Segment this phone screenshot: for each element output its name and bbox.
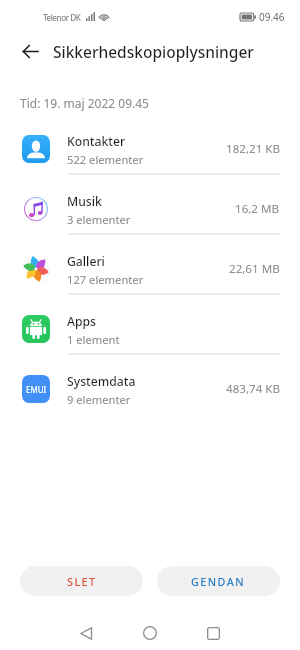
staticText: Galleri	[67, 253, 105, 270]
staticText: Musik	[67, 193, 102, 210]
staticText: Apps	[67, 313, 97, 330]
staticText: 182,21 KB	[226, 141, 280, 157]
button[interactable]: SLET	[20, 566, 143, 596]
staticText: Kontakter	[67, 133, 126, 150]
staticText: EMUI	[26, 384, 47, 395]
button[interactable]: Back	[11, 32, 49, 70]
staticText: 127 elementer	[67, 272, 144, 287]
staticText: GENDAN	[191, 574, 246, 589]
staticText: Systemdata	[67, 373, 136, 390]
staticText: Telenor DK	[43, 12, 81, 23]
button[interactable]: GENDAN	[157, 566, 280, 596]
staticText: Tid: 19. maj 2022 09.45	[20, 95, 149, 111]
staticText: 3 elementer	[67, 212, 131, 227]
button[interactable]: Recents	[200, 620, 226, 646]
button[interactable]: Galleri	[0, 239, 300, 299]
staticText: 1 element	[67, 332, 120, 347]
staticText: Sikkerhedskopioplysninger	[53, 41, 254, 62]
staticText: SLET	[67, 574, 97, 589]
staticText: 483,74 KB	[226, 381, 280, 397]
button[interactable]: EMUI	[0, 359, 300, 419]
staticText: 522 elementer	[67, 152, 144, 167]
staticText: 09.46	[259, 10, 285, 24]
button[interactable]: Back	[73, 620, 99, 646]
button[interactable]: Apps	[0, 299, 300, 359]
button[interactable]: Musik	[0, 179, 300, 239]
staticText: 9 elementer	[67, 392, 131, 407]
button[interactable]: Kontakter	[0, 119, 300, 179]
button[interactable]: Home	[137, 620, 163, 646]
staticText: 16,2 MB	[235, 201, 280, 217]
staticText: 22,61 MB	[229, 261, 280, 277]
